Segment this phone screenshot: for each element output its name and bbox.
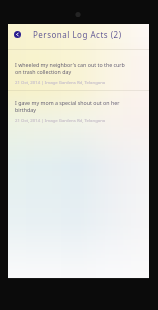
staticText: on trash collection day: [15, 68, 72, 75]
staticText: 21 Oct, 2014 | Image Gardens Rd, Telanga…: [15, 79, 106, 85]
staticText: I gave my mom a special shout out on her: [15, 99, 120, 106]
button[interactable]: I wheeled my neighbor's can out to the c…: [8, 50, 149, 90]
staticText: I wheeled my neighbor's can out to the c…: [15, 61, 125, 68]
staticText: Personal Log Acts (2): [33, 29, 122, 40]
button[interactable]: I gave my mom a special shout out on her: [8, 91, 149, 131]
button[interactable]: Back: [14, 31, 21, 38]
staticText: 21 Oct, 2014 | Image Gardens Rd, Telanga…: [15, 117, 106, 123]
staticText: birthday: [15, 106, 36, 113]
